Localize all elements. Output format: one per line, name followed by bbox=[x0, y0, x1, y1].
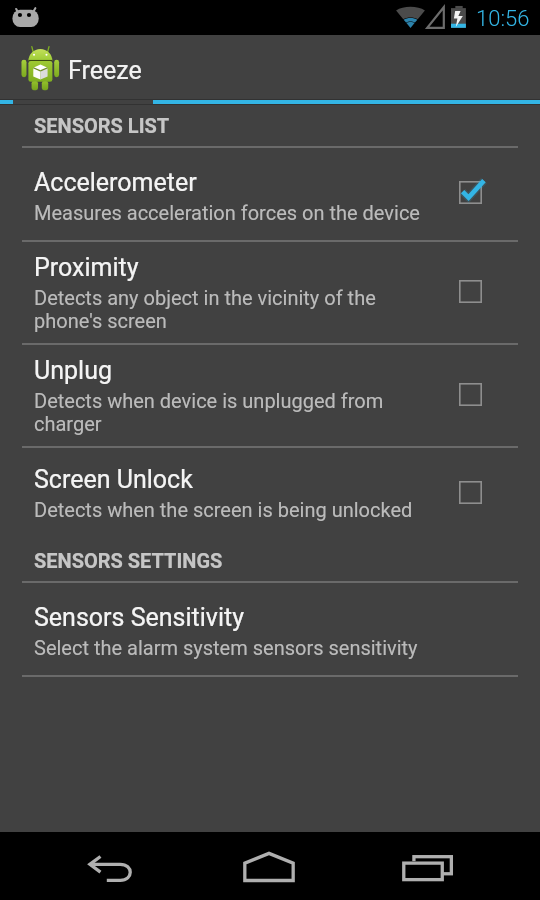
staticText: Detects when the screen is being unlocke… bbox=[34, 498, 413, 521]
staticText: Proximity bbox=[34, 253, 139, 282]
staticText: Accelerometer bbox=[34, 168, 197, 197]
staticText: Unplug bbox=[34, 356, 112, 385]
staticText: Screen Unlock bbox=[34, 465, 193, 494]
staticText: SENSORS SETTINGS bbox=[34, 549, 223, 572]
button[interactable]: Home bbox=[232, 837, 308, 895]
staticText: Detects any object in the vicinity of th… bbox=[34, 286, 376, 332]
staticText: Detects when device is unplugged from ch… bbox=[34, 389, 384, 435]
button[interactable]: Accelerometer bbox=[0, 148, 540, 240]
button[interactable]: Toggle bbox=[451, 377, 489, 415]
button[interactable]: Toggle bbox=[451, 475, 489, 513]
button[interactable]: Proximity bbox=[0, 242, 540, 343]
button[interactable]: Unplug bbox=[0, 345, 540, 446]
button[interactable]: Toggle bbox=[451, 175, 489, 213]
staticText: SENSORS LIST bbox=[34, 114, 170, 137]
staticText: Freeze bbox=[68, 56, 142, 85]
button[interactable]: Recents bbox=[392, 837, 468, 895]
button[interactable]: Screen Unlock bbox=[0, 448, 540, 540]
staticText: 10:56 bbox=[476, 6, 530, 32]
button[interactable]: Toggle bbox=[451, 274, 489, 312]
staticText: Sensors Sensitivity bbox=[34, 603, 244, 632]
staticText: Select the alarm system sensors sensitiv… bbox=[34, 636, 418, 659]
staticText: Measures acceleration forces on the devi… bbox=[34, 201, 420, 224]
button[interactable]: Back bbox=[74, 837, 150, 895]
button[interactable]: Sensors Sensitivity bbox=[0, 583, 540, 675]
